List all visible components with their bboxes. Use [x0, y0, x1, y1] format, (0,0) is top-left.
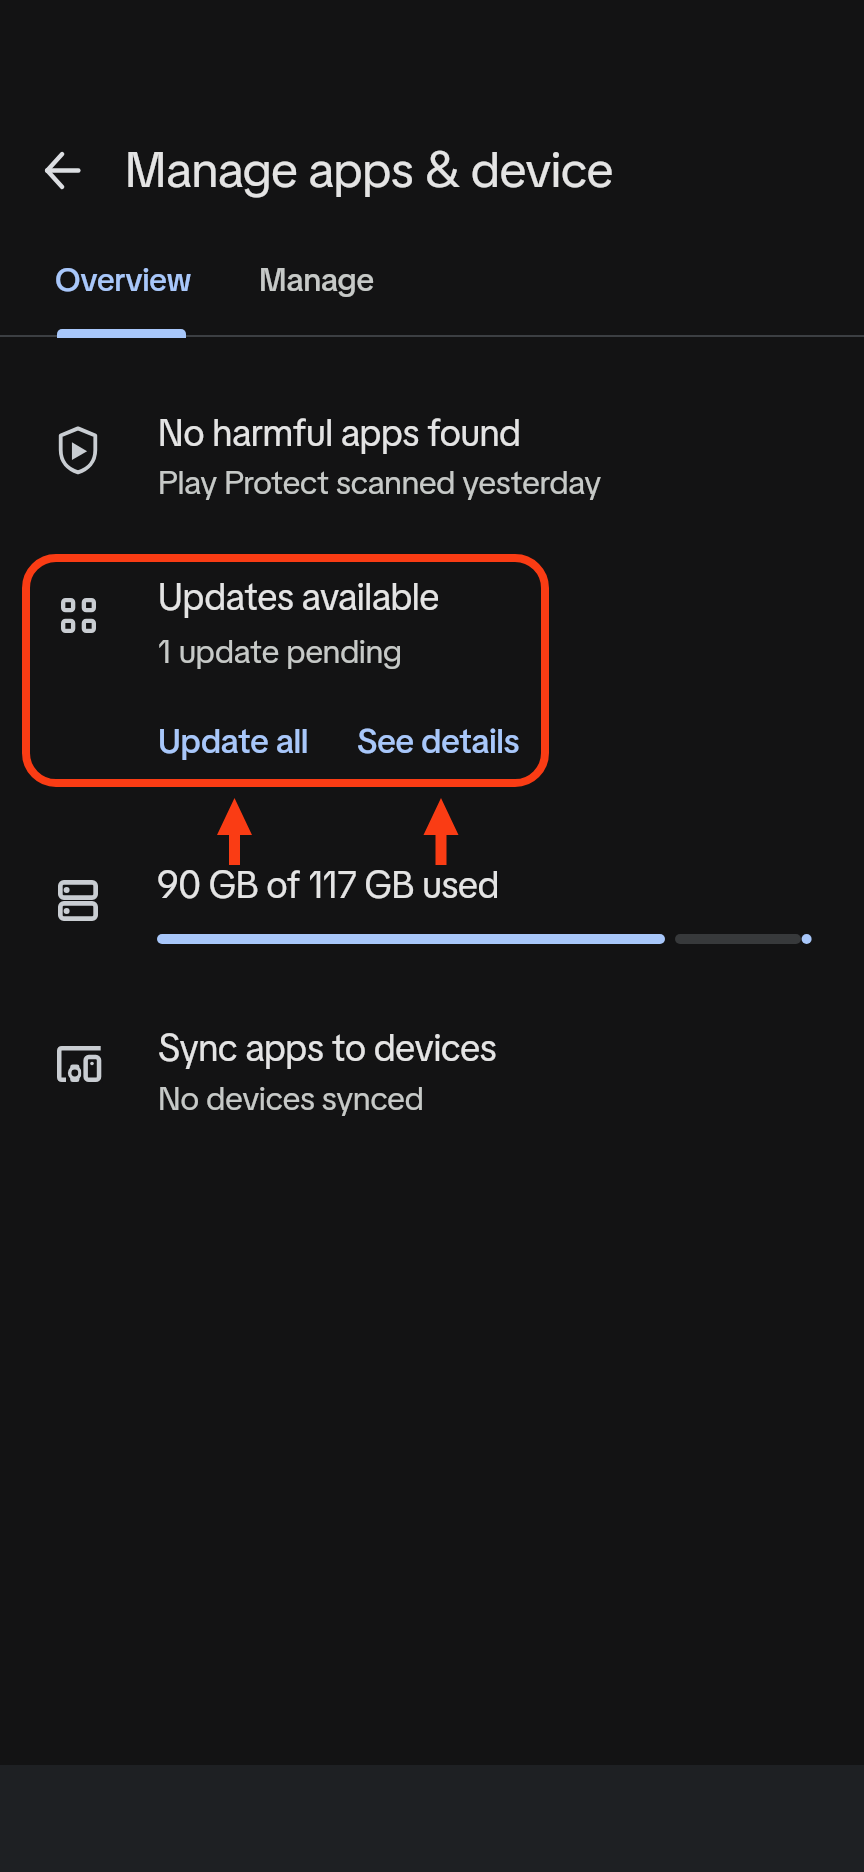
staticText: Manage apps & device	[125, 137, 613, 202]
button[interactable]: Update all	[146, 708, 318, 770]
staticText: Manage	[259, 259, 374, 301]
button[interactable]: Overview	[0, 245, 243, 336]
staticText: Update all	[158, 719, 309, 763]
staticText: No devices synced	[158, 1077, 424, 1120]
button[interactable]: Updates available	[0, 548, 864, 791]
staticText: 90 GB of 117 GB used	[157, 861, 500, 909]
staticText: Play Protect scanned yesterday	[158, 461, 602, 504]
button[interactable]: No harmful apps found	[0, 382, 864, 518]
staticText: Overview	[55, 259, 192, 301]
button[interactable]: Sync apps to devices	[0, 1008, 864, 1146]
staticText: No harmful apps found	[158, 409, 521, 457]
staticText: See details	[357, 719, 520, 763]
button[interactable]: Manage	[243, 245, 391, 336]
button[interactable]: Back	[20, 128, 104, 212]
button[interactable]: See details	[344, 708, 528, 770]
button[interactable]: 90 GB of 117 GB used	[0, 845, 864, 985]
staticText: Updates available	[158, 573, 440, 621]
staticText: Sync apps to devices	[158, 1024, 497, 1072]
staticText: 1 update pending	[158, 630, 402, 673]
